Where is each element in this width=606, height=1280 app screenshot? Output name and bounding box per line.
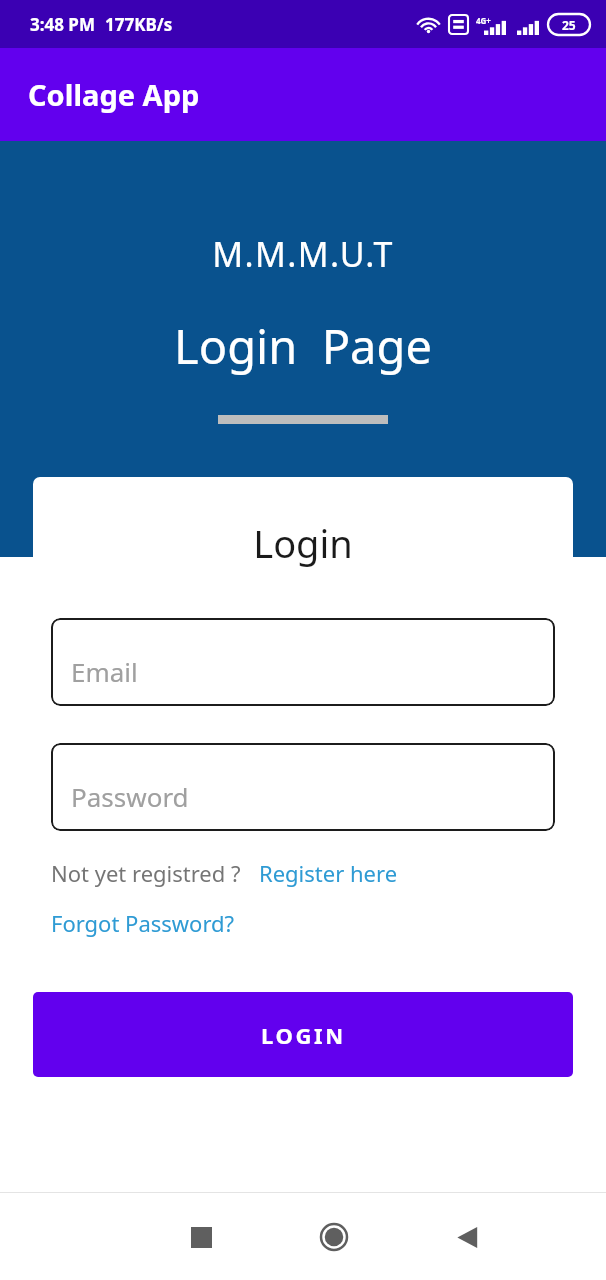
- staticText: Collage App: [28, 75, 200, 114]
- staticText: Register here: [259, 858, 398, 888]
- staticText: Forgot Password?: [51, 908, 235, 938]
- button[interactable]: Email: [51, 618, 555, 706]
- staticText: M.M.M.U.T: [212, 231, 394, 277]
- button[interactable]: Password: [51, 743, 555, 831]
- button[interactable]: Forgot Password?: [51, 908, 235, 938]
- button[interactable]: Back: [440, 1210, 494, 1264]
- staticText: Email: [71, 654, 138, 689]
- staticText: 177KB/s: [105, 13, 173, 36]
- button[interactable]: Home: [307, 1210, 361, 1264]
- button[interactable]: LOGIN: [33, 992, 573, 1077]
- staticText: 4G+: [476, 15, 491, 26]
- staticText: Login: [33, 517, 573, 569]
- staticText: Password: [71, 779, 189, 814]
- staticText: 3:48 PM: [30, 13, 95, 36]
- staticText: Login Page: [174, 314, 432, 378]
- staticText: LOGIN: [261, 1020, 346, 1050]
- button[interactable]: Recent apps: [174, 1210, 228, 1264]
- staticText: Not yet registred ?: [51, 858, 241, 888]
- button[interactable]: Register here: [259, 858, 398, 888]
- staticText: 25: [562, 17, 576, 33]
